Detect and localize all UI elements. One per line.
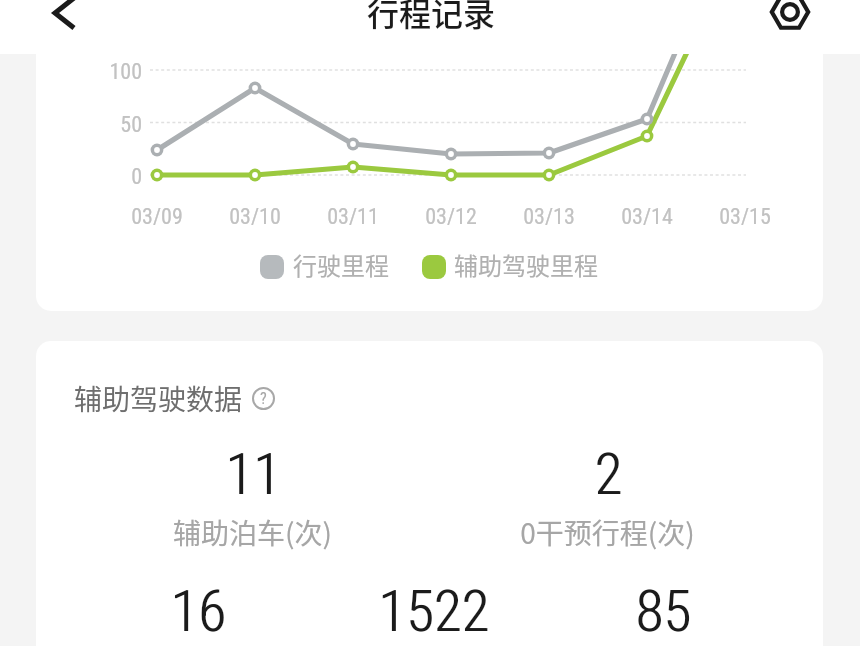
staticText: 16	[170, 578, 226, 645]
staticText: 1522	[379, 578, 490, 645]
staticText: 50	[120, 112, 142, 138]
staticText: ?	[260, 389, 267, 408]
button[interactable]: Back	[42, 0, 86, 35]
staticText: 85	[635, 578, 691, 645]
staticText: 100	[109, 59, 142, 85]
staticText: 2	[595, 441, 623, 508]
staticText: 辅助泊车(次)	[173, 512, 332, 551]
staticText: 03/11	[327, 204, 379, 230]
staticText: 2	[594, 441, 622, 508]
staticText: 行驶里程	[293, 247, 389, 282]
staticText: 辅助驾驶里程	[454, 247, 598, 282]
button[interactable]: Settings	[762, 0, 818, 39]
staticText: 03/12	[425, 204, 477, 230]
staticText: 辅助驾驶数据	[74, 378, 243, 419]
staticText: 03/13	[523, 204, 575, 230]
staticText: 03/14	[621, 204, 673, 230]
staticText: 03/09	[131, 204, 183, 230]
staticText: 11	[225, 441, 281, 508]
staticText: 行程记录	[367, 0, 496, 35]
button[interactable]: 11	[112, 441, 392, 551]
button[interactable]: 2	[467, 441, 747, 551]
button[interactable]: 16	[58, 578, 338, 646]
staticText: 0干预行程(次)	[520, 512, 695, 551]
staticText: 0	[131, 164, 142, 190]
staticText: 16	[171, 578, 227, 645]
staticText: 85	[636, 578, 692, 645]
button[interactable]: 85	[523, 578, 803, 646]
button[interactable]: 1522	[293, 578, 573, 646]
staticText: 11	[226, 441, 282, 508]
staticText: 03/15	[719, 204, 771, 230]
staticText: 1522	[378, 578, 489, 645]
staticText: 03/10	[229, 204, 281, 230]
button[interactable]: About assisted-driving data	[252, 387, 275, 410]
